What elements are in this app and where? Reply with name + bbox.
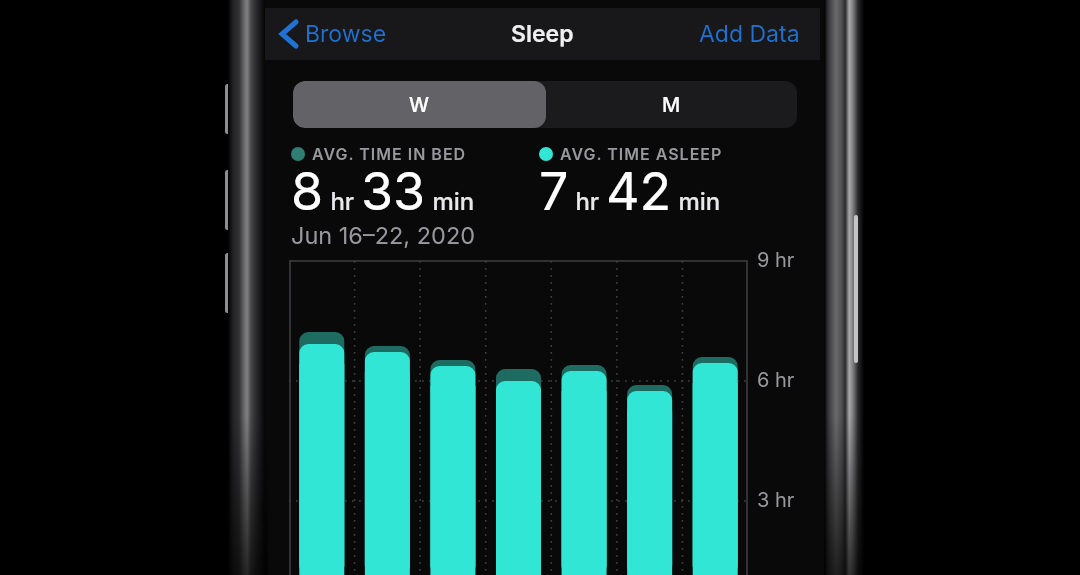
- staticText: 42: [606, 160, 672, 223]
- staticText: 6 hr: [757, 368, 795, 392]
- staticText: W: [409, 93, 430, 117]
- staticText: Browse: [305, 20, 387, 48]
- staticText: Add Data: [699, 20, 800, 48]
- staticText: Jun 16–22, 2020: [291, 221, 476, 249]
- staticText: 7: [539, 160, 569, 223]
- staticText: M: [662, 93, 681, 117]
- staticText: AVG. TIME ASLEEP: [560, 144, 723, 163]
- button[interactable]: Add Data: [699, 20, 800, 48]
- staticText: 33: [361, 160, 426, 223]
- staticText: 8: [291, 160, 324, 223]
- staticText: Sleep: [511, 20, 574, 48]
- staticText: min: [426, 187, 475, 216]
- staticText: 3 hr: [757, 488, 795, 512]
- button[interactable]: W: [293, 81, 546, 128]
- staticText: hr: [324, 187, 361, 216]
- staticText: 9 hr: [757, 248, 795, 272]
- staticText: min: [672, 187, 721, 216]
- button[interactable]: M: [546, 81, 797, 128]
- staticText: AVG. TIME IN BED: [312, 144, 467, 163]
- button[interactable]: Browse: [280, 20, 387, 48]
- staticText: hr: [569, 187, 606, 216]
